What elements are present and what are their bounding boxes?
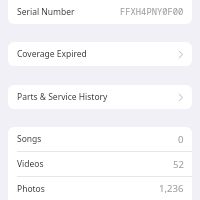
staticText: 0	[178, 133, 184, 146]
staticText: 52	[173, 158, 184, 171]
staticText: FFXH4PNY0F00	[120, 6, 184, 18]
button[interactable]: Videos	[8, 152, 192, 176]
button[interactable]: Coverage Expired	[8, 42, 192, 66]
staticText: Parts & Service History	[17, 91, 108, 103]
staticText: Photos	[17, 183, 45, 195]
staticText: Coverage Expired	[17, 48, 87, 60]
button[interactable]: Songs	[8, 127, 192, 151]
staticText: Songs	[17, 133, 42, 145]
other: Open	[179, 93, 183, 102]
button[interactable]: Parts & Service History	[8, 85, 192, 109]
staticText: 1,236	[159, 182, 184, 195]
button[interactable]: Serial Number	[8, 0, 192, 24]
other: Open	[179, 50, 183, 59]
staticText: Serial Number	[17, 6, 75, 18]
staticText: Videos	[17, 158, 44, 170]
button[interactable]: Photos	[8, 177, 192, 200]
